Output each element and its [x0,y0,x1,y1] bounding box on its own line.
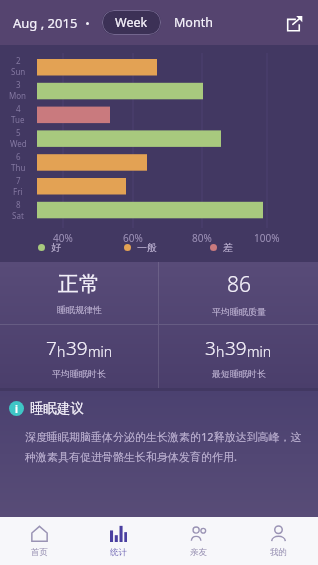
staticText: 8 [16,199,21,210]
staticText: 我的 [270,547,287,558]
staticText: 7 [46,335,57,361]
staticText: 4 [16,103,21,114]
button[interactable]: Share [278,7,310,39]
staticText: 正常 [58,271,100,297]
button[interactable]: 我的 [238,517,318,565]
staticText: Aug , 2015 [13,14,78,32]
staticText: 睡眠规律性 [57,304,102,315]
staticText: 39 [225,335,247,361]
button[interactable]: 86 [159,262,318,324]
button[interactable]: 差 [210,241,296,254]
staticText: Tue [11,114,25,125]
staticText: 100% [254,231,280,245]
staticText: Wed [10,138,27,149]
staticText: 差 [223,241,233,254]
staticText: h [216,342,225,361]
button[interactable]: 好 [38,241,124,254]
staticText: 2 [16,55,21,66]
staticText: Mon [9,90,27,101]
staticText: 统计 [110,547,127,558]
staticText: 6 [16,151,21,162]
staticText: 平均睡眠时长 [52,368,106,379]
staticText: min [247,342,272,361]
button[interactable]: 统计 [79,517,158,565]
staticText: 86 [227,270,251,299]
staticText: Thu [11,162,26,173]
staticText: 5 [16,127,21,138]
button[interactable]: 首页 [0,517,79,565]
button[interactable]: Month [167,9,220,36]
staticText: i [15,402,18,416]
button[interactable]: 3 [159,325,318,388]
staticText: 最短睡眠时长 [212,368,266,379]
staticText: 亲友 [190,547,207,558]
button[interactable]: 一般 [124,241,210,254]
button[interactable]: i [0,391,318,517]
staticText: Week [115,14,148,31]
staticText: 3 [16,79,21,90]
staticText: 40% [53,231,73,245]
staticText: Sat [12,210,24,221]
button[interactable]: 7 [0,325,158,388]
staticText: Month [174,14,213,31]
button[interactable]: Aug , 2015 [11,6,91,40]
button[interactable]: 亲友 [158,517,238,565]
staticText: 3 [205,335,216,361]
staticText: min [88,342,113,361]
staticText: 39 [66,335,88,361]
staticText: 平均睡眠质量 [212,306,266,317]
button[interactable]: Week [102,10,161,35]
button[interactable]: 正常 [0,262,158,324]
staticText: 60% [123,231,143,245]
staticText: h [57,342,66,361]
staticText: 好 [51,241,61,254]
staticText: 一般 [137,241,157,254]
staticText: Sun [11,66,26,77]
staticText: 睡眠建议 [30,400,84,417]
staticText: 首页 [31,547,48,558]
staticText: Fri [13,186,23,197]
staticText: 深度睡眠期脑垂体分泌的生长激素的12释放达到高峰，这种激素具有促进骨骼生长和身体… [25,429,312,464]
staticText: 7 [16,175,21,186]
staticText: 80% [192,231,212,245]
